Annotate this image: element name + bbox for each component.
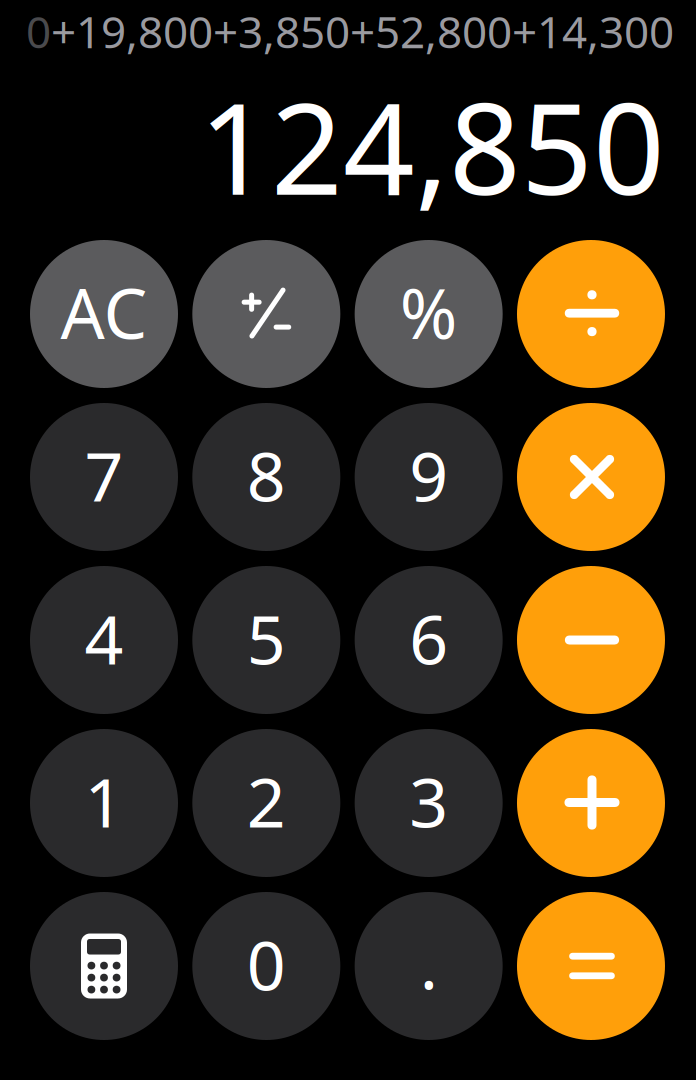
staticText: 3 (409, 756, 448, 846)
button[interactable]: 4 (30, 566, 178, 714)
button[interactable]: AC (30, 240, 178, 388)
button[interactable]: 1 (30, 729, 178, 877)
staticText: 1 (84, 756, 123, 846)
button[interactable]: 6 (355, 566, 503, 714)
button[interactable]: Equals (517, 892, 665, 1040)
staticText: 5 (247, 593, 286, 683)
button[interactable]: 9 (355, 403, 503, 551)
staticText: 4 (84, 593, 123, 683)
button[interactable]: 5 (192, 566, 340, 714)
staticText: +19,800+3,850+52,800+14,300 (51, 2, 674, 60)
staticText: . (420, 918, 438, 1008)
button[interactable]: Subtract (517, 566, 665, 714)
button[interactable]: 8 (192, 403, 340, 551)
staticText: 7 (84, 430, 123, 520)
staticText: 2 (247, 756, 286, 846)
staticText: 6 (409, 593, 448, 683)
button[interactable]: 3 (355, 729, 503, 877)
button[interactable]: Multiply (517, 403, 665, 551)
button[interactable]: . (355, 892, 503, 1040)
staticText: AC (60, 266, 147, 358)
button[interactable]: 7 (30, 403, 178, 551)
button[interactable]: Toggle sign (192, 240, 340, 388)
button[interactable]: Divide (517, 240, 665, 388)
staticText: 0 (247, 919, 286, 1009)
staticText: 9 (409, 430, 448, 520)
button[interactable]: 2 (192, 729, 340, 877)
staticText: 8 (247, 430, 286, 520)
button[interactable]: Add (517, 729, 665, 877)
staticText: 0 (26, 2, 51, 60)
button[interactable]: 0 (192, 892, 340, 1040)
staticText: 124,850 (199, 63, 665, 229)
button[interactable]: Calculator (30, 892, 178, 1040)
staticText: % (400, 266, 458, 358)
button[interactable]: % (355, 240, 503, 388)
